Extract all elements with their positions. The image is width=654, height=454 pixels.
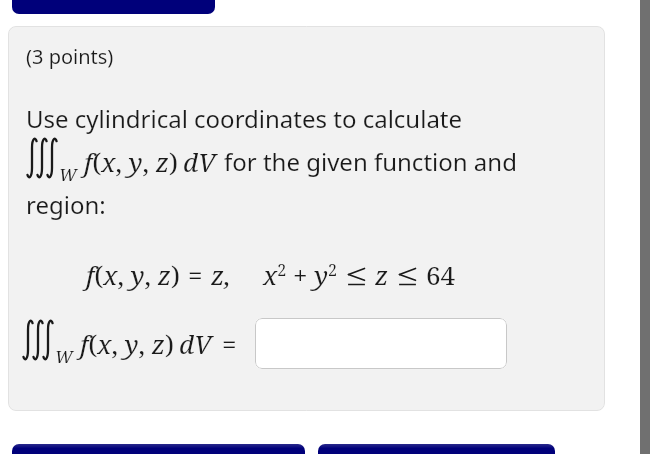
staticText: for the given function and xyxy=(224,145,517,178)
staticText: f(x, y, z) xyxy=(80,326,174,361)
button[interactable]: Previous answer button xyxy=(12,0,215,14)
staticText: z xyxy=(375,257,389,292)
button[interactable]: Save progress xyxy=(318,444,555,454)
staticText: W xyxy=(55,345,73,368)
staticText: x2 + y2 xyxy=(263,257,337,292)
staticText: W xyxy=(59,163,77,186)
button[interactable]: Answer input field xyxy=(255,318,507,369)
staticText: z, xyxy=(211,257,231,292)
staticText: dV xyxy=(179,326,212,361)
staticText: 64 xyxy=(426,257,456,292)
staticText: f(x, y, z) xyxy=(86,257,180,292)
staticText: dV xyxy=(183,144,216,179)
staticText: = xyxy=(222,326,237,361)
staticText: Use cylindrical coordinates to calculate xyxy=(26,102,463,135)
staticText: = xyxy=(188,257,203,292)
staticText: (3 points) xyxy=(26,43,114,70)
staticText: region: xyxy=(26,188,106,221)
staticText: f(x, y, z) xyxy=(84,144,178,179)
button[interactable]: Submit answer xyxy=(12,444,305,454)
